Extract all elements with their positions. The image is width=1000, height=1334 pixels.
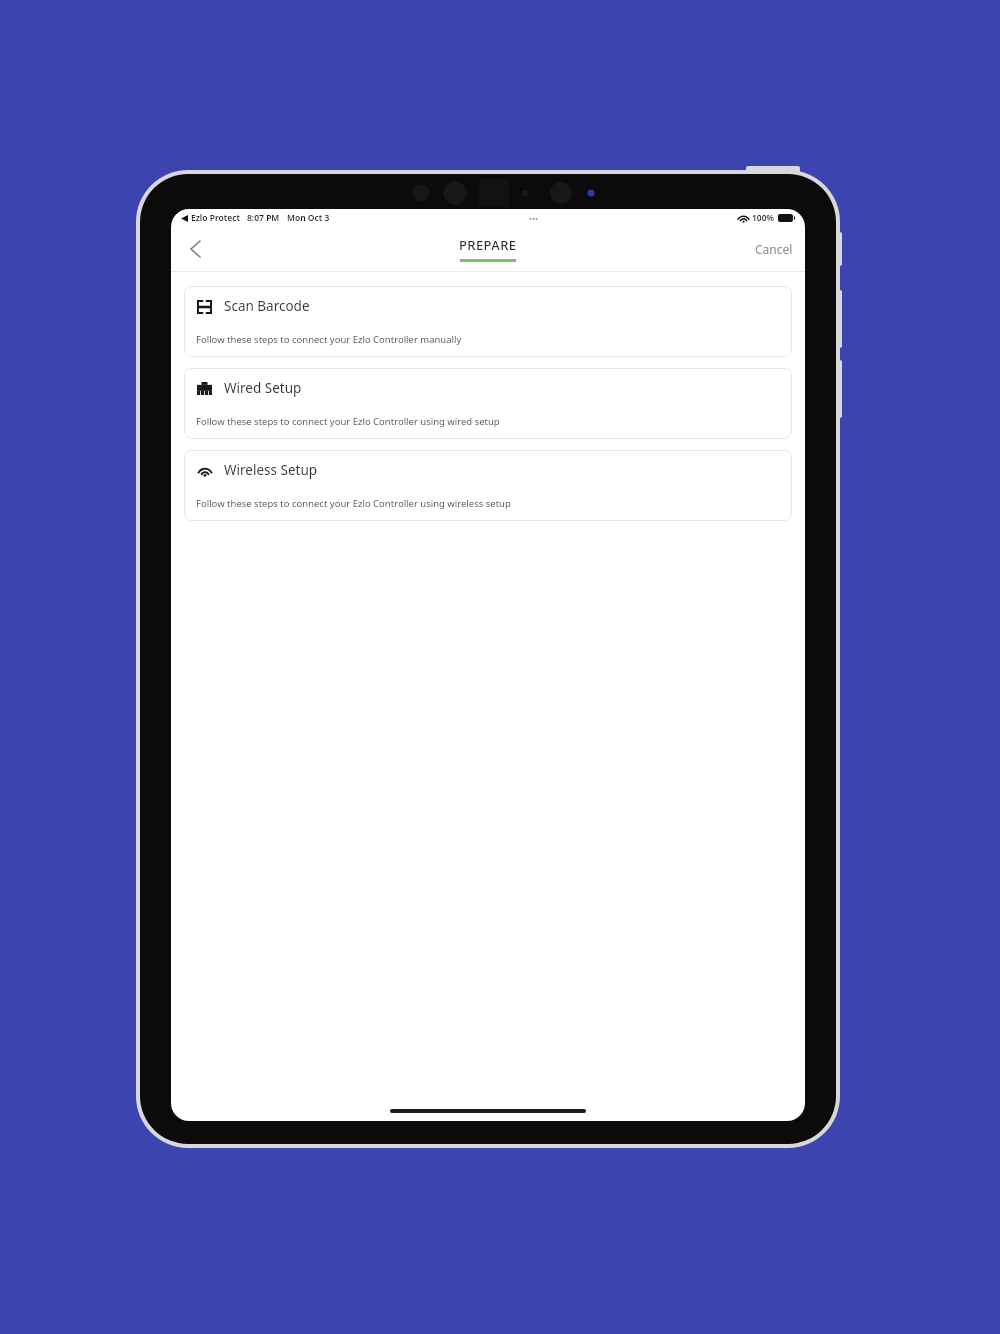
staticText: Mon Oct 3 xyxy=(287,212,330,224)
staticText: Follow these steps to connect your Ezlo … xyxy=(196,415,500,428)
button[interactable]: Cancel xyxy=(743,233,805,265)
button[interactable]: Wired Setup xyxy=(184,368,792,439)
staticText: Ezlo Protect xyxy=(191,212,240,224)
button[interactable]: Scan Barcode xyxy=(184,286,792,357)
staticText: 8:07 PM xyxy=(247,212,280,224)
button[interactable]: Wireless Setup xyxy=(184,450,792,521)
staticText: ••• xyxy=(529,213,539,224)
staticText: PREPARE xyxy=(459,236,517,254)
staticText: Wired Setup xyxy=(224,379,302,397)
button[interactable]: Back xyxy=(175,229,215,269)
staticText: Cancel xyxy=(755,241,793,257)
staticText: Follow these steps to connect your Ezlo … xyxy=(196,497,511,510)
staticText: Follow these steps to connect your Ezlo … xyxy=(196,333,462,346)
staticText: Scan Barcode xyxy=(224,297,310,315)
staticText: 100% xyxy=(752,212,775,224)
staticText: Wireless Setup xyxy=(224,461,318,479)
